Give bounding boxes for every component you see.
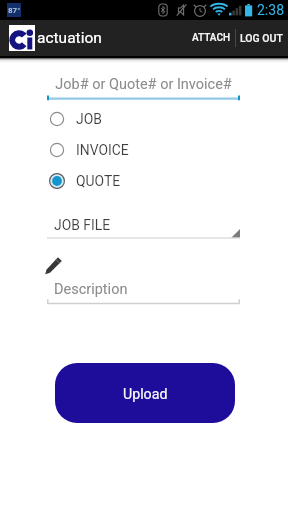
staticText: JOB: [76, 111, 102, 127]
staticText: Job# or Quote# or Invoice#: [47, 76, 240, 93]
button[interactable]: LOG OUT: [236, 20, 287, 56]
button[interactable]: JOB: [46, 108, 240, 130]
button[interactable]: INVOICE: [46, 139, 240, 161]
staticText: JOB FILE: [54, 217, 111, 233]
staticText: 2:38: [257, 2, 284, 18]
staticText: Upload: [123, 386, 168, 403]
staticText: LOG OUT: [240, 32, 283, 44]
button[interactable]: Job# or Quote# or Invoice#: [47, 76, 240, 101]
staticText: ATTACH: [192, 32, 231, 44]
button[interactable]: Description: [47, 281, 240, 305]
staticText: QUOTE: [76, 173, 121, 189]
button[interactable]: Edit description: [44, 256, 64, 276]
button[interactable]: JOB FILE: [47, 213, 240, 239]
staticText: Description: [54, 281, 128, 298]
staticText: INVOICE: [76, 142, 129, 158]
staticText: 87°: [8, 6, 21, 15]
staticText: actuation: [37, 29, 102, 47]
button[interactable]: QUOTE: [46, 170, 240, 192]
button[interactable]: Upload: [55, 363, 235, 423]
button[interactable]: ATTACH: [185, 20, 237, 56]
